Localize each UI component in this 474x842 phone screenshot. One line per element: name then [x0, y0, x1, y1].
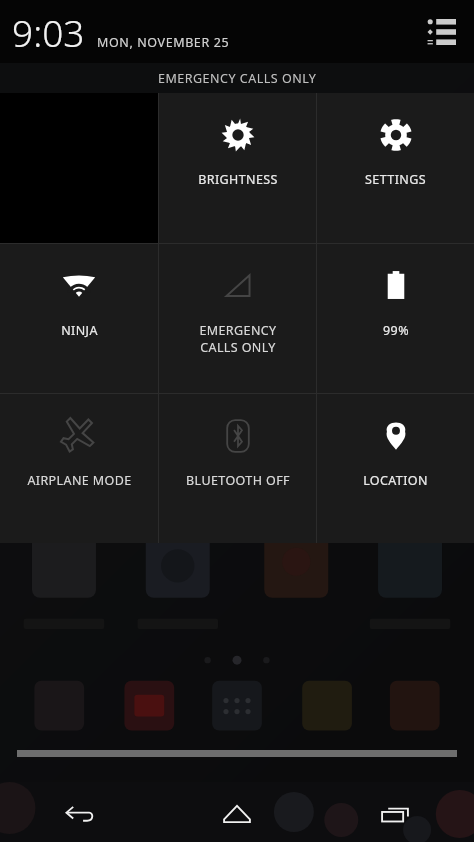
staticText: MON, NOVEMBER 25 [97, 34, 230, 51]
button[interactable]: SETTINGS [317, 93, 474, 243]
staticText: AIRPLANE MODE [27, 472, 132, 489]
button[interactable]: Back [0, 786, 158, 842]
button[interactable]: Notifications [418, 9, 464, 55]
button[interactable]: EMERGENCY CALLS ONLY [159, 244, 316, 393]
button[interactable]: BRIGHTNESS [159, 93, 316, 243]
button[interactable]: 99% [317, 244, 474, 393]
staticText: LOCATION [363, 472, 428, 489]
staticText: EMERGENCY CALLS ONLY [199, 322, 277, 355]
staticText: 9:03 [12, 7, 85, 57]
staticText: BLUETOOTH OFF [186, 472, 290, 489]
button[interactable]: AIRPLANE MODE [0, 394, 158, 543]
button[interactable]: NINJA [0, 244, 158, 393]
staticText: NINJA [61, 322, 98, 339]
staticText: BRIGHTNESS [198, 171, 278, 188]
staticText: SETTINGS [365, 171, 426, 188]
button[interactable]: Recent apps [316, 786, 474, 842]
button[interactable]: BLUETOOTH OFF [159, 394, 316, 543]
staticText: EMERGENCY CALLS ONLY [158, 70, 317, 87]
button[interactable]: LOCATION [317, 394, 474, 543]
staticText: 99% [383, 322, 409, 339]
button[interactable]: Home [158, 786, 316, 842]
